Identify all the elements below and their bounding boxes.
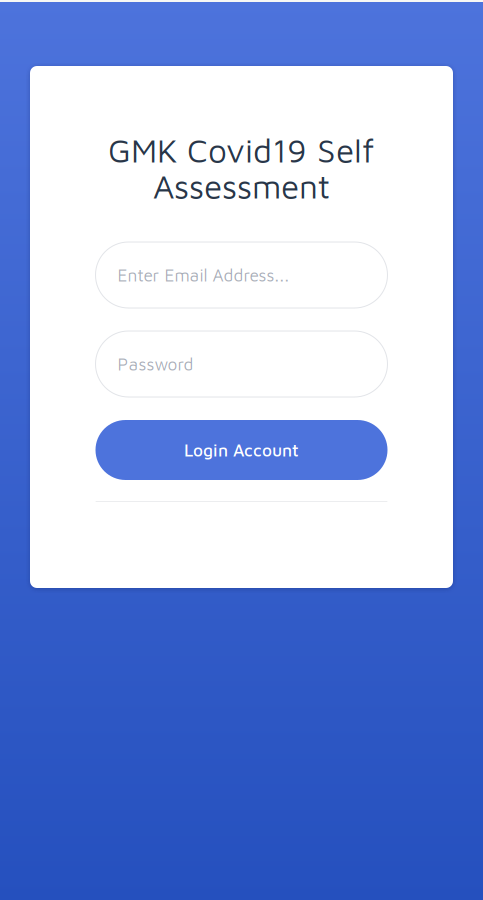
staticText: Assessment xyxy=(153,166,330,206)
staticText: GMK Covid19 Self xyxy=(108,130,375,170)
button[interactable]: Password xyxy=(95,331,387,397)
button[interactable]: Enter Email Address... xyxy=(95,242,387,308)
staticText: Login Account xyxy=(184,440,299,460)
staticText: Password xyxy=(117,354,193,374)
button[interactable]: Login Account xyxy=(95,420,387,480)
staticText: Enter Email Address... xyxy=(117,265,289,285)
